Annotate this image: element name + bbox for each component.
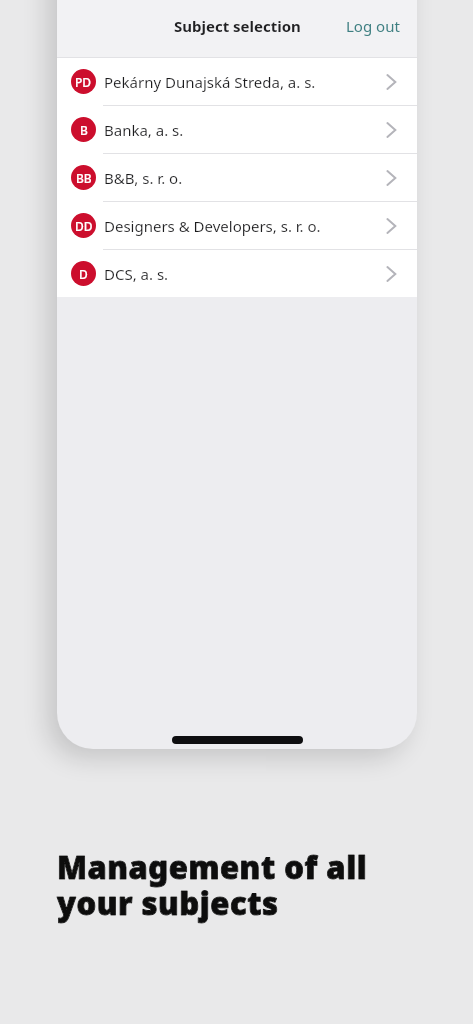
staticText: DCS, a. s. [104, 264, 169, 284]
staticText: PD [75, 74, 92, 90]
button[interactable]: D [57, 250, 417, 297]
staticText: B&B, s. r. o. [104, 168, 183, 188]
staticText: Log out [346, 16, 400, 36]
staticText: D [79, 266, 88, 282]
staticText: Banka, a. s. [104, 120, 184, 140]
staticText: B [80, 122, 88, 138]
button[interactable]: B [57, 106, 417, 153]
staticText: Management of all your subjects [57, 846, 368, 924]
button[interactable]: PD [57, 58, 417, 105]
button[interactable]: DD [57, 202, 417, 249]
staticText: Pekárny Dunajská Streda, a. s. [104, 72, 316, 92]
staticText: Designers & Developers, s. r. o. [104, 216, 321, 236]
staticText: Subject selection [174, 16, 301, 36]
button[interactable]: Log out [329, 10, 417, 42]
button[interactable]: BB [57, 154, 417, 201]
staticText: BB [76, 170, 92, 186]
staticText: Management of all your subjects [57, 846, 368, 924]
staticText: DD [75, 218, 93, 234]
